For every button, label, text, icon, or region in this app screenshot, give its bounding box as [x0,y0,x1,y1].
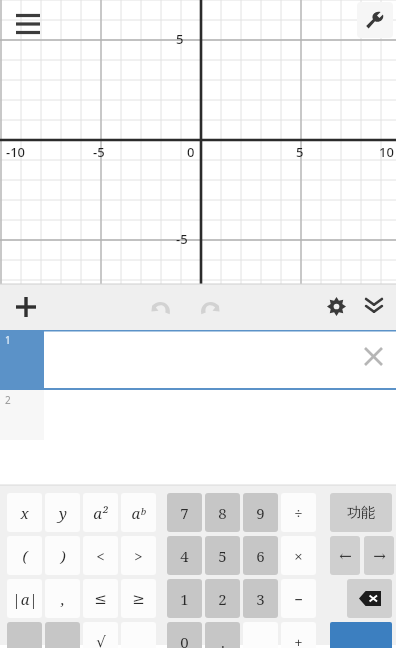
staticText: ≤ [94,590,107,607]
button[interactable]: + [281,622,316,648]
button[interactable]: 3 [243,579,278,618]
button[interactable]: 6 [243,536,278,575]
button[interactable]: 2 [0,390,396,440]
button[interactable]: Backspace [347,579,392,618]
button[interactable]: x [7,493,42,532]
staticText: 2 [218,589,227,609]
staticText: 1 [180,589,189,609]
staticText: x [20,503,29,523]
staticText: + [294,632,303,648]
button[interactable]: |a| [7,579,42,618]
staticText: -10 [6,143,26,161]
staticText: − [294,589,303,609]
staticText: , [61,589,65,609]
staticText: aᵇ [131,503,146,523]
button[interactable]: Settings [320,290,352,322]
button[interactable]: ( [7,536,42,575]
button[interactable]: < [83,536,118,575]
staticText: ÷ [294,503,303,523]
button[interactable]: → [364,536,394,575]
button[interactable]: 2 [205,579,240,618]
staticText: 5 [296,143,304,161]
button[interactable]: ≥ [121,579,156,618]
button[interactable]: 7 [167,493,202,532]
button[interactable]: Enter [330,622,392,648]
staticText: 4 [180,546,189,566]
staticText: 1 [5,333,11,347]
staticText: . [221,632,225,648]
staticText: 8 [218,503,227,523]
staticText: 10 [379,143,394,161]
staticText: < [96,546,105,566]
staticText: y [59,503,67,523]
staticText: ← [339,547,352,564]
staticText: 功能 [347,504,375,522]
staticText: → [373,547,386,564]
button[interactable]: Clear expression [358,341,388,371]
button[interactable]: Menu [10,6,46,42]
staticText: |a| [12,589,38,609]
button[interactable]: × [281,536,316,575]
staticText: 0 [187,143,195,161]
staticText: ( [22,546,28,566]
button[interactable]: Undo [145,291,179,325]
button[interactable]: 1 [167,579,202,618]
button[interactable]: ← [330,536,360,575]
button[interactable]: √ [83,622,118,648]
staticText: ≥ [132,590,145,607]
button[interactable]: . [205,622,240,648]
staticText: 0 [180,632,189,648]
button[interactable]: 8 [205,493,240,532]
staticText: 6 [256,546,265,566]
button[interactable]: 9 [243,493,278,532]
button[interactable]: y [45,493,80,532]
button[interactable]: 4 [167,536,202,575]
button[interactable]: ) [45,536,80,575]
button[interactable]: ≤ [83,579,118,618]
staticText: -5 [93,143,105,161]
button[interactable]: 0 [167,622,202,648]
staticText: 5 [218,546,227,566]
button[interactable]: Tools [357,2,393,38]
button[interactable]: − [281,579,316,618]
button[interactable]: 5 [205,536,240,575]
staticText: 5 [176,30,184,48]
button[interactable]: Redo [192,291,226,325]
button[interactable]: 功能 [330,493,392,532]
button[interactable]: 1 [0,330,396,390]
button[interactable]: , [45,579,80,618]
button[interactable]: a² [83,493,118,532]
staticText: × [294,546,303,566]
staticText: 9 [256,503,265,523]
staticText: a² [93,503,108,523]
staticText: -5 [176,230,188,248]
staticText: 7 [180,503,189,523]
button[interactable]: ÷ [281,493,316,532]
button[interactable]: aᵇ [121,493,156,532]
staticText: 3 [256,589,265,609]
button[interactable]: Add expression [8,289,44,325]
staticText: ) [60,546,66,566]
button[interactable]: Collapse [358,290,390,322]
button[interactable]: > [121,536,156,575]
staticText: √ [96,633,106,648]
staticText: > [134,546,143,566]
staticText: 2 [5,393,11,407]
